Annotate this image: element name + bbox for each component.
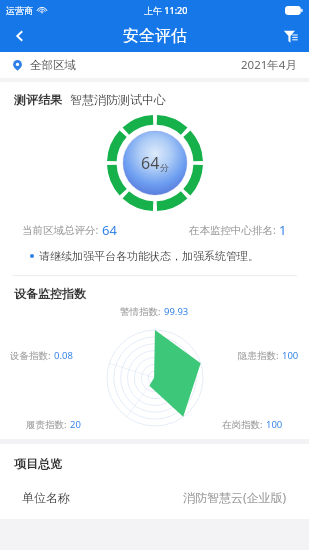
- staticText: 在岗指数:: [222, 418, 266, 431]
- staticText: 智慧消防测试中心: [70, 92, 166, 107]
- staticText: 全部区域: [30, 58, 76, 72]
- staticText: 在本监控中心排名:: [189, 223, 276, 237]
- staticText: 1: [279, 221, 287, 239]
- staticText: 64: [141, 152, 160, 174]
- staticText: 上午 11:20: [144, 4, 188, 16]
- staticText: 20: [70, 418, 81, 431]
- button[interactable]: Back: [0, 20, 40, 52]
- staticText: 64: [102, 221, 117, 239]
- staticText: 运营商: [6, 5, 33, 16]
- staticText: 消防智慧云(企业版): [183, 489, 287, 505]
- staticText: 请继续加强平台各功能状态，加强系统管理。: [39, 249, 259, 263]
- staticText: 100: [266, 418, 283, 431]
- staticText: 当前区域总评分:: [22, 223, 99, 237]
- staticText: 设备监控指数: [14, 286, 86, 301]
- staticText: 测评结果: [14, 92, 62, 107]
- button[interactable]: Filter: [271, 20, 309, 52]
- staticText: 分: [160, 162, 169, 173]
- staticText: 设备指数:: [10, 349, 54, 362]
- staticText: 单位名称: [22, 490, 70, 505]
- staticText: 2021年4月: [241, 57, 297, 73]
- staticText: 隐患指数:: [238, 349, 282, 362]
- staticText: 安全评估: [123, 26, 187, 46]
- staticText: 0.08: [54, 349, 73, 362]
- staticText: 警情指数:: [120, 305, 164, 318]
- staticText: 99.93: [164, 305, 189, 318]
- staticText: 100: [282, 349, 299, 362]
- staticText: 履责指数:: [26, 418, 70, 431]
- button[interactable]: 全部区域: [0, 52, 309, 78]
- staticText: 项目总览: [14, 456, 62, 471]
